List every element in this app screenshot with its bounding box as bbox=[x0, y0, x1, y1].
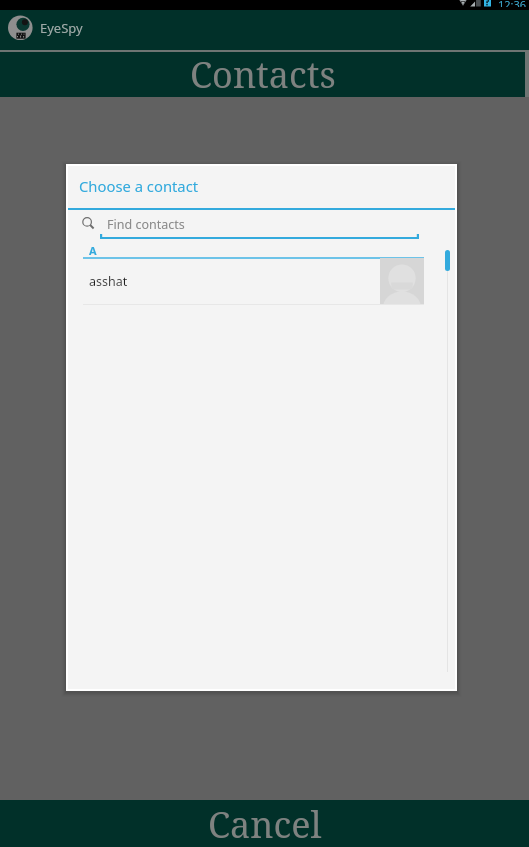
staticText: A bbox=[89, 243, 97, 258]
other: Search bbox=[82, 217, 96, 231]
button[interactable]: Cancel bbox=[0, 800, 529, 847]
staticText: Cancel bbox=[208, 800, 322, 847]
staticText: EyeSpy bbox=[40, 19, 83, 37]
staticText: 12:36 bbox=[498, 0, 527, 7]
staticText: asshat bbox=[89, 273, 128, 290]
button[interactable]: Contacts bbox=[0, 50, 529, 97]
staticText: Find contacts bbox=[107, 216, 185, 233]
staticText: Contacts bbox=[190, 50, 336, 95]
button[interactable]: Search bbox=[76, 212, 426, 238]
staticText: Choose a contact bbox=[79, 176, 199, 196]
other: EyeSpy app icon bbox=[8, 15, 33, 40]
button[interactable]: asshat bbox=[83, 258, 424, 304]
